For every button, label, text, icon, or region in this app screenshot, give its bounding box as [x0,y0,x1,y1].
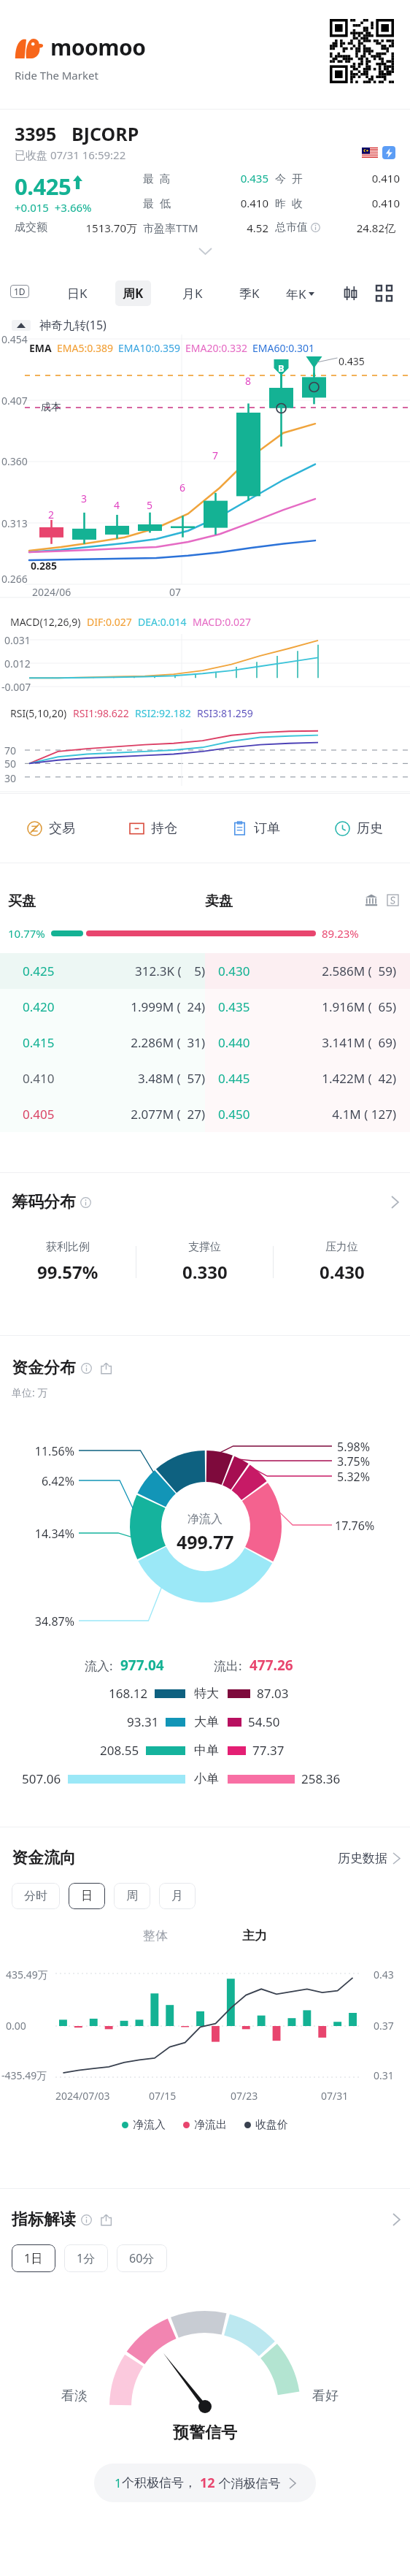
button[interactable]: Share [101,2214,112,2225]
staticText: 2.586M ( 59) [279,963,396,979]
button[interactable]: 神奇九转(15) [9,314,109,336]
staticText: 93.31 [127,1713,159,1730]
staticText: 交易 [49,820,75,837]
staticText: 07/15 [149,2089,177,2103]
staticText: 7 [212,448,219,462]
button[interactable]: 整体 [137,1925,174,1946]
button[interactable]: 1D [10,285,29,298]
staticText: 1513.70万 [63,221,137,235]
staticText: 12 [200,2474,215,2492]
button[interactable]: Quotes speed [382,146,395,159]
staticText: 3 [81,492,88,505]
staticText: 预警信号 [173,2423,237,2443]
button[interactable]: 主力 [236,1925,273,1946]
button[interactable]: 1 [94,2464,316,2502]
button[interactable]: 周K [115,280,151,306]
button[interactable]: 历史数据 [338,1851,400,1866]
button[interactable]: Settings [387,894,399,906]
staticText: 0.43 [374,1968,394,1981]
button[interactable]: 0.420 [0,989,410,1025]
staticText: 0.435 [216,171,268,186]
button[interactable]: 日K [60,280,95,306]
button[interactable]: 订单 [204,794,307,863]
staticText: 4 [114,498,120,512]
staticText: 订单 [254,820,280,837]
staticText: 50 [4,757,17,771]
staticText: 支撑位 [188,1240,221,1254]
staticText: 分时 [24,1889,47,1903]
staticText: RSI2:92.182 [135,706,191,720]
staticText: 1.999M ( 24) [96,998,205,1015]
staticText: 2024/07/03 [55,2089,110,2103]
staticText: 0.37 [374,2019,394,2033]
button[interactable]: Expand [199,248,212,254]
staticText: 0.330 [182,1260,228,1284]
staticText: B [278,362,285,375]
staticText: 资金分布 [12,1358,76,1378]
button[interactable]: 日 [69,1883,105,1909]
button[interactable]: 1分 [64,2244,108,2272]
staticText: 0.435 [218,998,250,1015]
button[interactable]: 年K [283,283,317,305]
staticText: 0.450 [218,1106,250,1123]
button[interactable]: 筹码分布 [0,1192,410,1212]
staticText: 0.031 [4,633,31,647]
button[interactable]: 周 [114,1883,150,1909]
button[interactable]: Market depth [365,893,378,906]
staticText: 流入: [85,1657,113,1674]
staticText: 卖盘 [205,893,233,910]
staticText: moomoo [50,32,146,62]
staticText: 最 高 [143,171,171,186]
staticText: 月 [171,1889,183,1903]
button[interactable]: Share [101,1363,112,1374]
button[interactable]: 0.410 [0,1060,410,1096]
button[interactable]: 月 [159,1883,196,1909]
staticText: 看好 [312,2388,339,2404]
button[interactable]: More indicators [374,283,395,304]
button[interactable]: 0.415 [0,1025,410,1060]
button[interactable]: 交易 [0,794,102,863]
staticText: 14.34% [15,1526,74,1542]
staticText: 流出: [214,1657,242,1674]
staticText: 6 [179,481,186,494]
button[interactable]: Candlestick [340,283,361,304]
staticText: 208.55 [100,1742,139,1759]
staticText: 看淡 [61,2388,88,2404]
staticText: 个积极信号， [122,2475,196,2491]
staticText: 季K [239,285,260,302]
staticText: 258.36 [301,1770,341,1787]
staticText: 中单 [194,1743,219,1758]
staticText: BJCORP [71,121,139,146]
staticText: -435.49万 [1,2068,47,2082]
staticText: 168.12 [109,1685,148,1702]
staticText: 0.410 [216,196,268,210]
button[interactable]: 月K [175,280,210,306]
button[interactable]: 持仓 [102,794,204,863]
staticText: 整体 [143,1928,168,1944]
staticText: 0.360 [1,454,28,468]
staticText: 买盘 [8,893,36,910]
button[interactable]: 季K [232,280,267,306]
staticText: 月K [182,285,203,302]
staticText: 0.410 [23,1070,55,1087]
staticText: 今 开 [275,171,303,186]
staticText: 477.26 [250,1656,293,1675]
staticText: 6.42% [15,1473,74,1489]
staticText: 2.286M ( 31) [96,1034,205,1051]
button[interactable]: 1日 [12,2244,55,2272]
staticText: 499.77 [177,1529,234,1554]
staticText: 0.410 [347,171,400,186]
staticText: 07 [169,585,182,599]
staticText: 2 [48,508,55,521]
button[interactable]: 0.405 [0,1096,410,1132]
staticText: 0.285 [31,559,57,573]
staticText: 持仓 [151,820,177,837]
button[interactable]: 分时 [12,1883,60,1909]
button[interactable]: 60分 [117,2244,167,2272]
button[interactable]: 历史 [307,794,410,863]
staticText: 17.76% [335,1518,375,1534]
staticText: 总市值 [275,221,308,234]
staticText: 最 低 [143,196,171,210]
button[interactable]: 0.425 [0,953,410,989]
staticText: 3.75% [337,1453,371,1469]
